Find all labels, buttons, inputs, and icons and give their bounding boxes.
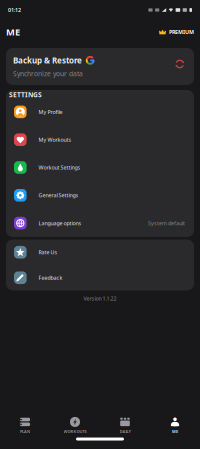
staticText: SETTINGS — [9, 90, 42, 99]
staticText: PLAN — [20, 429, 30, 434]
button[interactable]: WORKOUTS — [50, 417, 100, 434]
button[interactable]: PLAN — [0, 417, 50, 434]
staticText: WORKOUTS — [63, 429, 86, 434]
button[interactable]: ME — [150, 417, 200, 434]
button[interactable]: PREMIUM — [159, 28, 194, 36]
button[interactable]: Backup & Restore — [6, 48, 194, 85]
button[interactable]: My Workouts — [6, 126, 194, 154]
staticText: ME — [6, 26, 20, 38]
staticText: Synchronize your data — [13, 69, 83, 78]
staticText: Version 1.1.22 — [83, 295, 116, 302]
staticText: My Profile — [39, 108, 63, 115]
staticText: PREMIUM — [169, 28, 194, 36]
staticText: Workout Settings — [39, 164, 81, 171]
staticText: My Workouts — [39, 136, 72, 143]
staticText: ME — [172, 429, 178, 434]
button[interactable]: Workout Settings — [6, 154, 194, 181]
staticText: 01:12 — [8, 6, 21, 14]
button[interactable]: DAILY — [100, 417, 150, 434]
button[interactable]: Feedback — [6, 265, 194, 290]
button[interactable]: Language options — [6, 209, 194, 237]
staticText: DAILY — [119, 429, 130, 434]
staticText: General Settings — [39, 192, 79, 199]
staticText: Feedback — [39, 274, 63, 281]
button[interactable]: Rate Us — [6, 239, 194, 265]
staticText: Backup & Restore — [13, 55, 82, 66]
staticText: Rate Us — [39, 249, 58, 256]
button[interactable]: General Settings — [6, 181, 194, 209]
staticText: System default — [148, 220, 185, 227]
staticText: Language options — [39, 220, 82, 227]
button[interactable]: My Profile — [6, 98, 194, 126]
